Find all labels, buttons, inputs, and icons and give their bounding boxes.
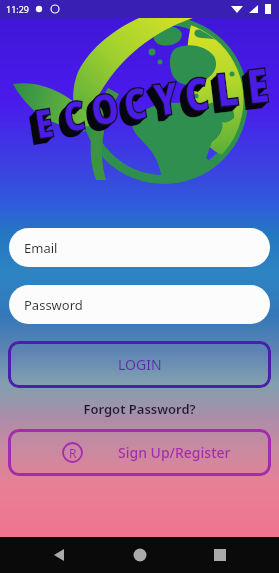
staticText: LOGIN xyxy=(118,355,162,374)
button[interactable]: Home xyxy=(125,540,155,570)
staticText: Sign Up/Register xyxy=(118,443,231,462)
button[interactable]: Password xyxy=(9,285,270,324)
button[interactable]: Back xyxy=(44,540,74,570)
button[interactable]: Forgot Password? xyxy=(0,400,279,418)
button[interactable]: Email xyxy=(9,228,270,267)
staticText: R xyxy=(69,445,77,461)
button[interactable]: R xyxy=(8,429,271,476)
staticText: 11:29 xyxy=(6,3,30,15)
staticText: Email xyxy=(24,239,58,257)
button[interactable]: Recents xyxy=(205,540,235,570)
staticText: Password xyxy=(24,296,83,314)
button[interactable]: LOGIN xyxy=(8,341,271,388)
